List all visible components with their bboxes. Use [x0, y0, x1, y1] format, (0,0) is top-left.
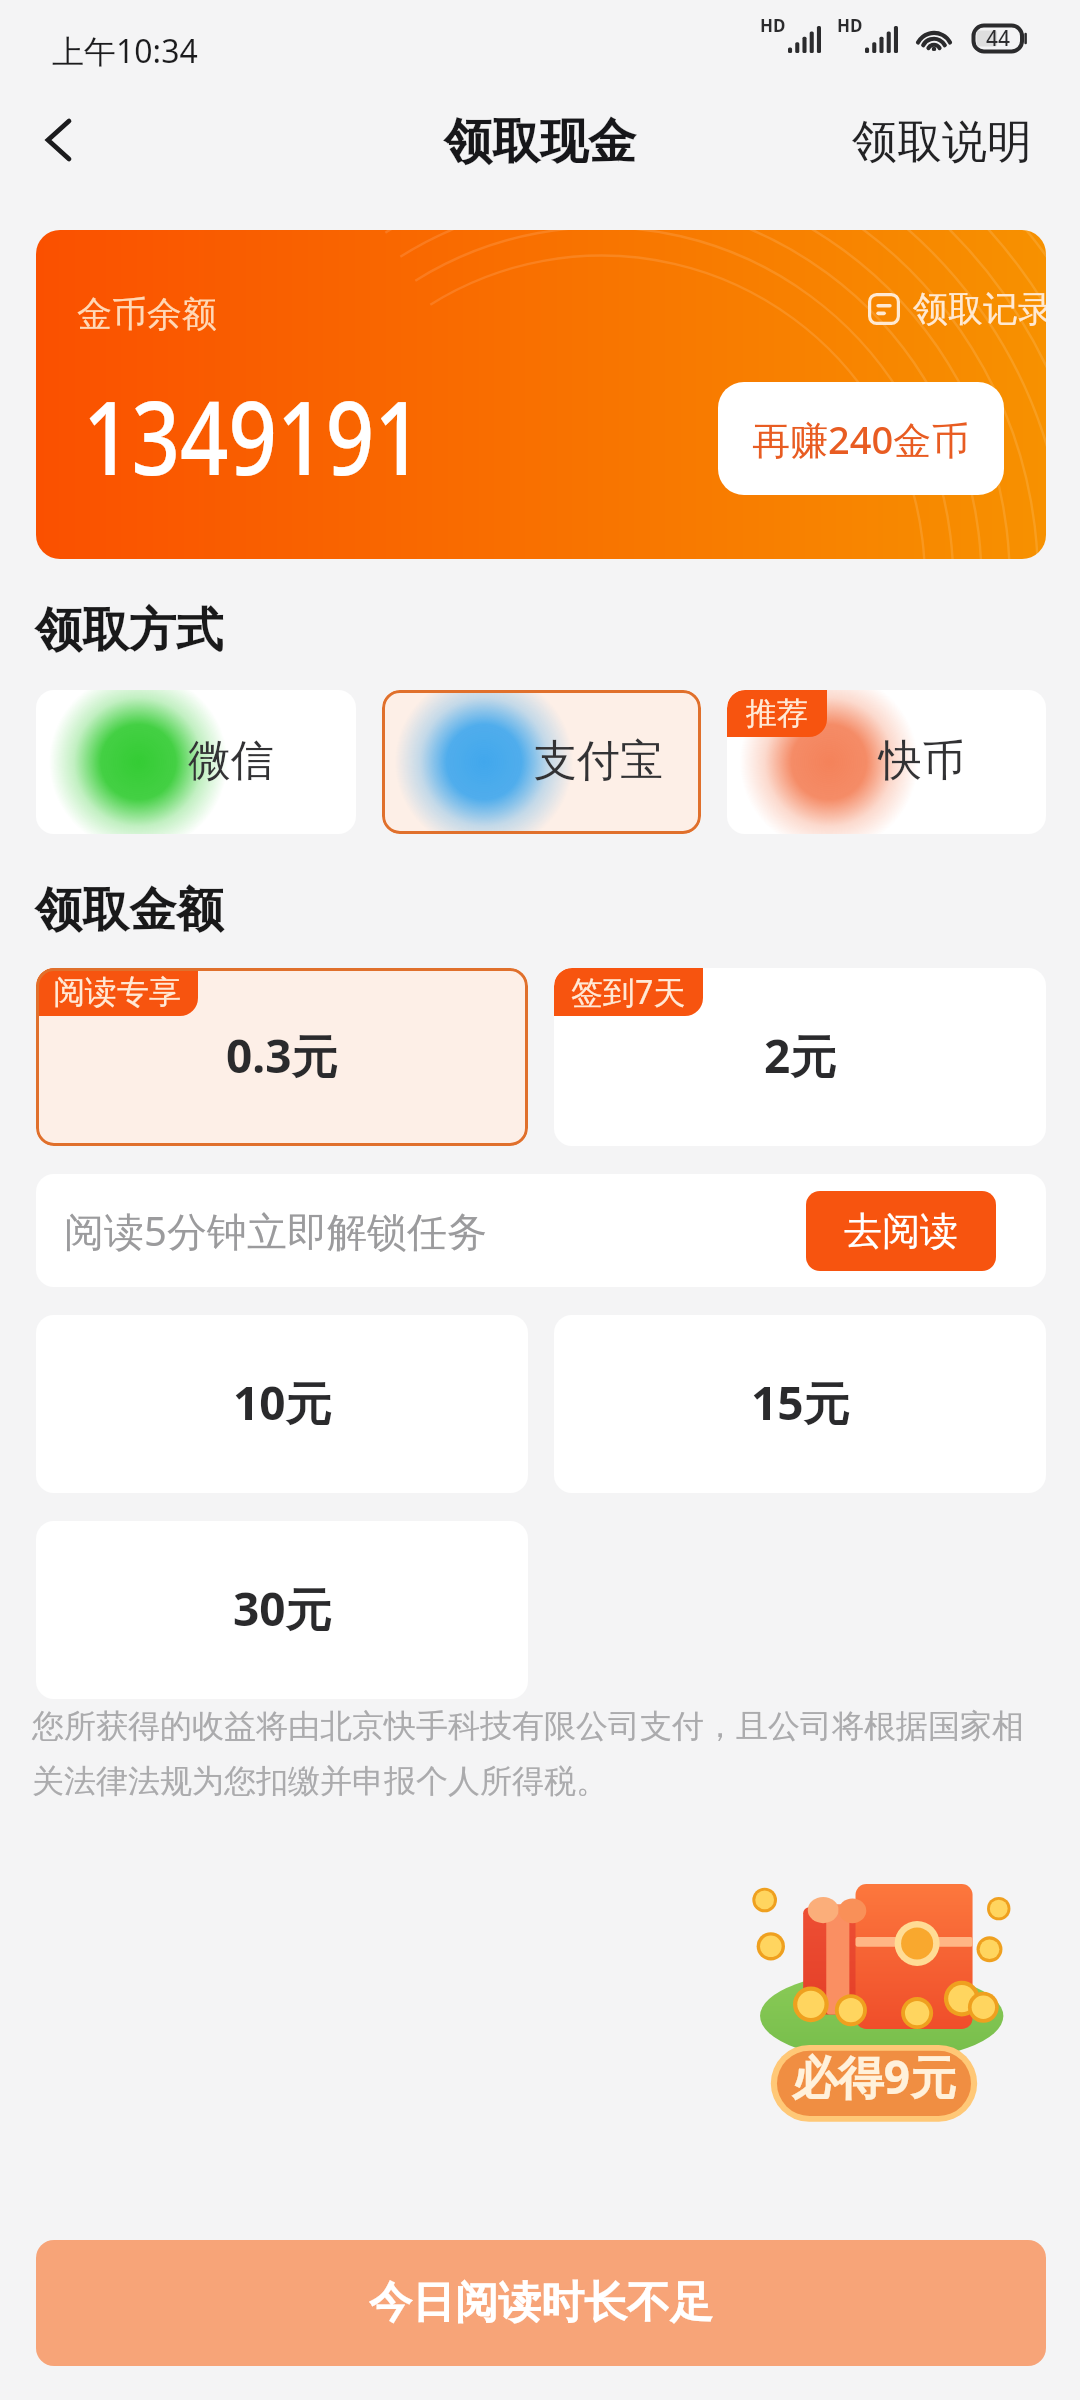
staticText: 10元 [233, 1371, 332, 1434]
staticText: 支付宝 [534, 734, 663, 788]
staticText: 领取现金 [444, 112, 636, 172]
button[interactable]: 支付宝 [382, 690, 701, 834]
staticText: 30元 [233, 1577, 332, 1640]
staticText: 15元 [751, 1371, 850, 1434]
staticText: 您所获得的收益将由北京快手科技有限公司支付，且公司将根据国家相关法律法规为您扣缴… [32, 1706, 1044, 1802]
staticText: 去阅读 [844, 1207, 958, 1255]
staticText: 0.3元 [226, 1024, 338, 1087]
staticText: 再赚240金币 [752, 413, 970, 465]
staticText: 2元 [764, 1024, 837, 1087]
button[interactable]: 15元 [554, 1315, 1046, 1493]
staticText: 阅读专享 [53, 972, 181, 1012]
staticText: 上午10:34 [52, 29, 198, 73]
staticText: 微信 [188, 734, 274, 788]
staticText: 金币余额 [77, 292, 217, 336]
button[interactable]: 今日阅读时长不足 [36, 2240, 1046, 2366]
staticText: 今日阅读时长不足 [369, 2276, 713, 2330]
staticText: 签到7天 [571, 970, 686, 1014]
staticText: 44 [986, 24, 1011, 53]
button[interactable]: 0.3元 [36, 968, 528, 1146]
staticText: 领取方式 [35, 601, 223, 660]
button[interactable]: 领取说明 [834, 100, 1050, 185]
staticText: 必得9元 [777, 2045, 971, 2108]
staticText: 1349191 [83, 367, 423, 505]
button[interactable]: 2元 [554, 968, 1046, 1146]
button[interactable]: 去阅读 [806, 1191, 996, 1271]
staticText: 领取金额 [35, 881, 223, 940]
staticText: HD [837, 14, 863, 37]
staticText: 阅读5分钟立即解锁任务 [64, 1203, 487, 1258]
staticText: HD [760, 14, 786, 37]
staticText: 推荐 [746, 694, 808, 733]
staticText: 快币 [879, 734, 965, 788]
button[interactable]: 微信 [36, 690, 356, 834]
button[interactable]: 领取记录 [868, 287, 1046, 331]
staticText: 领取说明 [852, 114, 1032, 171]
button[interactable]: 10元 [36, 1315, 528, 1493]
button[interactable]: Back [21, 102, 97, 178]
button[interactable]: 再赚240金币 [718, 382, 1004, 495]
button[interactable]: 快币 [727, 690, 1046, 834]
staticText: 领取记录 [913, 287, 1046, 331]
button[interactable]: 30元 [36, 1521, 528, 1699]
